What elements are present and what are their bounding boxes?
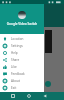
staticText: Like [11, 65, 17, 69]
button[interactable]: Exit [0, 84, 44, 91]
button[interactable]: Add [45, 81, 51, 87]
staticText: Google Video Switch [0, 22, 44, 26]
button[interactable]: Recents [9, 92, 17, 100]
button[interactable]: Location [0, 35, 44, 42]
staticText: Exit [11, 86, 17, 90]
button[interactable]: Help [0, 49, 44, 56]
button[interactable]: Back [41, 92, 49, 100]
button[interactable]: About [0, 77, 44, 84]
staticText: Settings [11, 44, 23, 48]
button[interactable]: Settings [0, 42, 44, 49]
button[interactable]: Profile photo [18, 11, 26, 19]
button[interactable]: Share [0, 56, 44, 63]
staticText: Help [11, 51, 18, 55]
staticText: About [11, 79, 20, 83]
button[interactable]: Feedback [0, 70, 44, 77]
button[interactable]: Home [25, 92, 33, 100]
staticText: Location [11, 37, 24, 41]
button[interactable]: Like [0, 63, 44, 70]
staticText: Feedback [11, 72, 25, 76]
staticText: Share [11, 58, 20, 62]
